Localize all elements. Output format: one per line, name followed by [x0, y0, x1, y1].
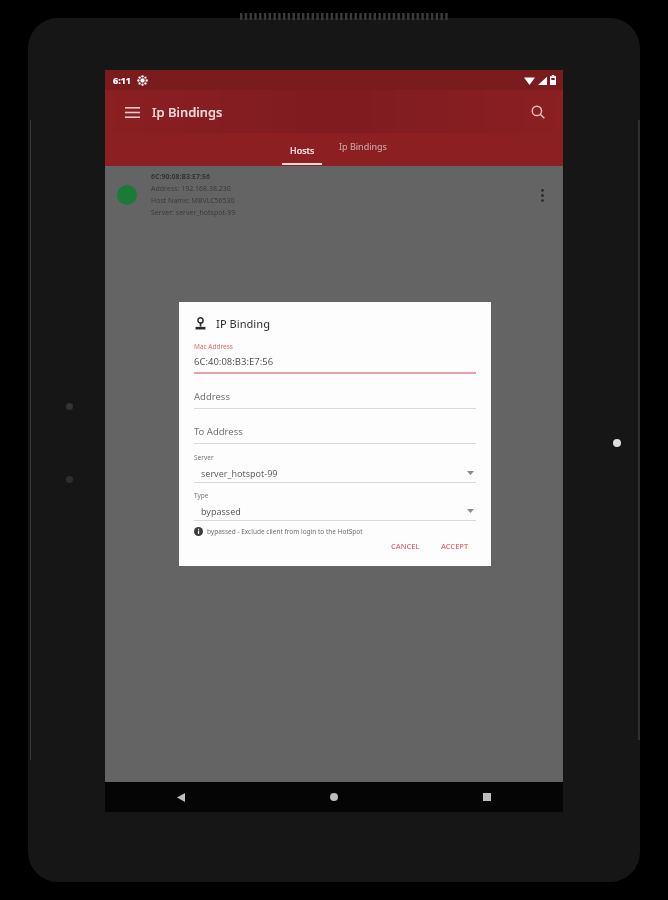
staticText: Address — [194, 390, 230, 403]
staticText: Mac Address — [194, 342, 233, 351]
staticText: 6C:90:08:B3:E7:56 — [151, 172, 210, 182]
staticText: Server: server_hotspot-99 — [151, 208, 236, 218]
button[interactable]: Back — [105, 782, 257, 812]
button[interactable]: Address — [194, 390, 476, 409]
staticText: Ip Bindings — [339, 140, 387, 152]
staticText: CANCEL — [391, 541, 420, 551]
button[interactable]: Search — [521, 95, 555, 129]
button[interactable]: More options — [527, 180, 557, 210]
staticText: Hosts — [290, 144, 315, 156]
staticText: ACCEPT — [441, 541, 469, 551]
staticText: bypassed — [201, 505, 467, 517]
button[interactable]: Recent apps — [410, 782, 563, 812]
staticText: bypassed - Exclude client from login to … — [207, 527, 363, 536]
staticText: Type — [194, 491, 209, 500]
button[interactable]: ACCEPT — [434, 537, 476, 555]
button[interactable]: Ip Bindings — [331, 133, 395, 166]
staticText: Host Name: MBVLC56530 — [151, 196, 235, 206]
button[interactable]: To Address — [194, 425, 476, 444]
staticText: IP Binding — [216, 316, 271, 331]
button[interactable]: Open navigation drawer — [115, 95, 149, 129]
staticText: server_hotspot-99 — [201, 467, 467, 479]
staticText: 6C:40:08:B3:E7:56 — [194, 355, 274, 368]
staticText: Server — [194, 453, 214, 462]
button[interactable]: Hosts — [273, 133, 331, 166]
button[interactable]: Home — [257, 782, 410, 812]
staticText: 6:11 — [113, 74, 131, 86]
button[interactable]: Type — [194, 491, 476, 521]
button[interactable]: CANCEL — [384, 537, 427, 555]
staticText: To Address — [194, 425, 243, 438]
button[interactable]: Server — [194, 453, 476, 483]
staticText: Address: 192.168.38.230 — [151, 184, 231, 194]
button[interactable]: 6C:90:08:B3:E7:56 — [105, 166, 563, 224]
staticText: Ip Bindings — [152, 103, 223, 121]
